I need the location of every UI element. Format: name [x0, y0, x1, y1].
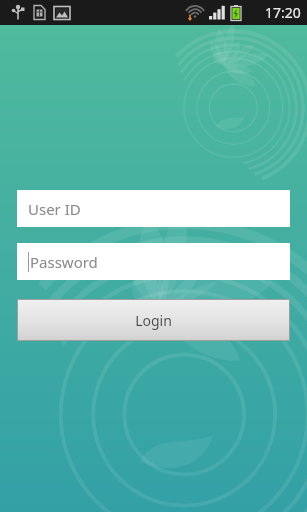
staticText: 17:20 [265, 3, 301, 22]
button[interactable]: User ID [17, 190, 290, 227]
staticText: Login [135, 311, 172, 330]
button[interactable]: Password [17, 243, 290, 280]
staticText: Password [30, 252, 98, 272]
button[interactable]: Login [18, 300, 289, 340]
staticText: User ID [28, 199, 81, 219]
